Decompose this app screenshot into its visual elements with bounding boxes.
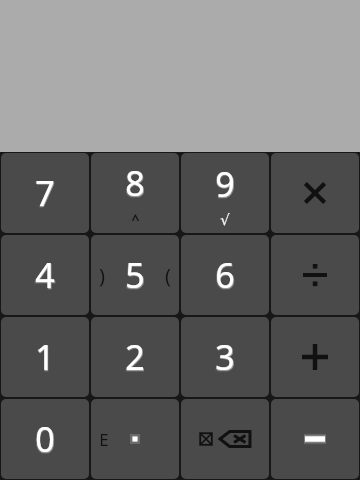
button[interactable]: 3 [181, 317, 269, 397]
staticText: 7 [35, 169, 56, 217]
staticText: 5 [125, 252, 145, 298]
button[interactable]: 9, square root [181, 153, 269, 233]
button[interactable]: Multiply [271, 153, 359, 233]
button[interactable]: 8, power [91, 153, 179, 233]
staticText: 8 [125, 159, 146, 207]
staticText: 5 [124, 250, 146, 300]
staticText: 0 [34, 413, 56, 465]
staticText: 0 [35, 415, 56, 463]
staticText: 1 [34, 332, 56, 382]
staticText: 6 [215, 251, 236, 299]
staticText: 7 [34, 168, 56, 218]
staticText: 4 [35, 251, 56, 299]
staticText: 4 [35, 252, 55, 298]
button[interactable]: E, decimal point [91, 399, 179, 479]
staticText: 3 [215, 334, 235, 380]
staticText: 4 [34, 249, 56, 301]
button[interactable]: 5, parentheses [91, 235, 179, 315]
button[interactable]: 4 [1, 235, 89, 315]
staticText: ) [99, 262, 105, 289]
staticText: 6 [214, 249, 236, 301]
staticText: 9 [214, 158, 236, 210]
staticText: 2 [124, 332, 146, 382]
staticText: 2 [124, 331, 146, 383]
staticText: 1 [35, 333, 56, 381]
staticText: 7 [34, 167, 56, 219]
staticText: 1 [34, 331, 56, 383]
staticText: 5 [125, 251, 146, 299]
staticText: 4 [34, 250, 56, 300]
staticText: ( [165, 262, 171, 289]
button[interactable]: 6 [181, 235, 269, 315]
staticText: 2 [125, 333, 146, 381]
staticText: 5 [124, 249, 146, 301]
staticText: 0 [34, 414, 56, 464]
staticText: √ [220, 211, 230, 228]
staticText: 3 [214, 332, 236, 382]
staticText: 9 [215, 160, 236, 208]
button[interactable]: Subtract [271, 399, 359, 479]
staticText: 3 [215, 333, 236, 381]
button[interactable]: 0 [1, 399, 89, 479]
button[interactable]: 2 [91, 317, 179, 397]
button[interactable]: 1 [1, 317, 89, 397]
staticText: ^ [131, 210, 140, 229]
button[interactable]: Divide [271, 235, 359, 315]
button[interactable]: Add [271, 317, 359, 397]
staticText: 1 [35, 334, 55, 380]
staticText: 7 [35, 170, 55, 216]
staticText: 9 [214, 159, 236, 209]
staticText: E [99, 428, 109, 451]
staticText: 2 [125, 334, 145, 380]
staticText: 0 [35, 416, 55, 462]
button[interactable]: 7 [1, 153, 89, 233]
staticText: 6 [215, 252, 235, 298]
staticText: 8 [125, 160, 145, 206]
staticText: 6 [214, 250, 236, 300]
staticText: 3 [214, 331, 236, 383]
staticText: 8 [124, 157, 146, 209]
button[interactable]: Backspace [181, 399, 269, 479]
staticText: 9 [215, 161, 235, 207]
staticText: 8 [124, 158, 146, 208]
